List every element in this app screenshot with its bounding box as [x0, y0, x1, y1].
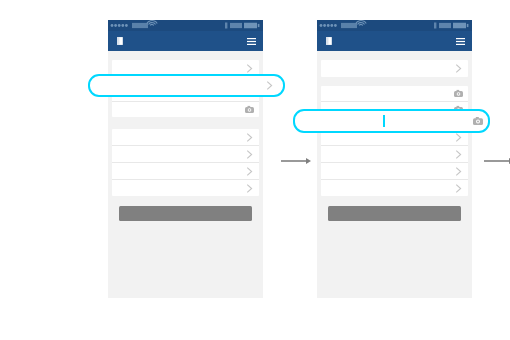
- button[interactable]: [112, 145, 259, 162]
- other: Take photo: [245, 89, 254, 98]
- button[interactable]: Take photo: [293, 109, 490, 133]
- button[interactable]: [112, 129, 259, 145]
- button[interactable]: Take photo: [321, 86, 468, 101]
- button[interactable]: [88, 74, 285, 97]
- button[interactable]: [112, 179, 259, 196]
- button[interactable]: Take photo: [112, 101, 259, 117]
- button[interactable]: [112, 60, 259, 77]
- button[interactable]: Take photo: [112, 86, 259, 101]
- button[interactable]: [321, 60, 468, 77]
- button[interactable]: App logo: [113, 34, 127, 48]
- other: Take photo: [454, 105, 463, 114]
- button[interactable]: [321, 179, 468, 196]
- other: Take photo: [245, 105, 254, 114]
- button[interactable]: [112, 162, 259, 179]
- button[interactable]: Menu: [453, 34, 467, 48]
- button[interactable]: [321, 162, 468, 179]
- button[interactable]: Take photo: [321, 101, 468, 117]
- button[interactable]: Menu: [244, 34, 258, 48]
- button[interactable]: App logo: [322, 34, 336, 48]
- other: Take photo: [473, 116, 483, 126]
- button[interactable]: [321, 129, 468, 145]
- button[interactable]: [321, 145, 468, 162]
- other: Take photo: [454, 89, 463, 98]
